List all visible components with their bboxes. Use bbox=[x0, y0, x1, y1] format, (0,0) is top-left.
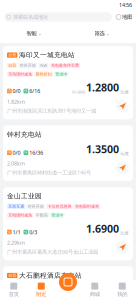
button[interactable]: 金山工业园 bbox=[3, 187, 133, 260]
staticText: 快 bbox=[7, 230, 11, 234]
staticText: 附近 bbox=[36, 291, 46, 297]
staticText: 1.82km bbox=[7, 98, 25, 105]
staticText: 1.6900 bbox=[86, 221, 119, 236]
staticText: 0/0 bbox=[13, 149, 21, 156]
staticText: 充电限时减免 bbox=[8, 72, 32, 77]
button[interactable]: 首页 bbox=[0, 283, 27, 297]
staticText: ¥1.3800 bbox=[72, 89, 85, 94]
staticText: 自营 bbox=[8, 273, 16, 278]
staticText: 16/36 bbox=[29, 149, 43, 156]
staticText: 地图 bbox=[122, 14, 132, 20]
staticText: 14:56 bbox=[119, 1, 132, 9]
staticText: 1.5500 bbox=[86, 292, 119, 300]
staticText: 1/1 bbox=[13, 228, 21, 236]
staticText: 智能 bbox=[26, 30, 36, 37]
staticText: 1.3500 bbox=[86, 142, 119, 156]
staticText: 2.08km bbox=[7, 160, 25, 167]
staticText: 大石鹏程酒店充电站 bbox=[19, 271, 82, 280]
button[interactable]: 钟村充电站 bbox=[3, 125, 133, 181]
staticText: 营业中 bbox=[55, 72, 67, 77]
staticText: 搜索站名或地址 bbox=[13, 14, 48, 20]
staticText: 充电桩免停车费 bbox=[51, 283, 79, 288]
staticText: 7kW bbox=[39, 63, 47, 68]
staticText: 限时折扣 bbox=[36, 72, 52, 77]
staticText: 充电限时减免 bbox=[75, 204, 99, 209]
button[interactable]: 扫一扫 bbox=[59, 273, 77, 291]
staticText: 慢 bbox=[24, 230, 28, 234]
staticText: ⌄ bbox=[105, 30, 109, 37]
button[interactable]: 自营 bbox=[3, 266, 133, 300]
staticText: 快 bbox=[7, 150, 11, 155]
button[interactable]: 附近 bbox=[27, 283, 55, 297]
button[interactable]: 导航 bbox=[116, 241, 129, 254]
button[interactable]: 智能 bbox=[0, 30, 68, 37]
button[interactable]: 自营 bbox=[3, 46, 133, 119]
staticText: 6/16 bbox=[29, 87, 40, 95]
staticText: 充电限时减免 bbox=[8, 213, 32, 218]
staticText: 元/度 bbox=[120, 230, 129, 236]
button[interactable]: 导航 bbox=[116, 100, 129, 113]
staticText: 元/度 bbox=[120, 89, 129, 94]
staticText: 商城 bbox=[90, 291, 100, 297]
staticText: 自营 bbox=[8, 63, 16, 68]
staticText: 7kW bbox=[39, 283, 47, 288]
staticText: 海印又一城充电站 bbox=[19, 51, 75, 59]
staticText: 2.29km bbox=[7, 239, 25, 246]
staticText: 广州市海珠区滨江东路381号海印又一城 bbox=[7, 107, 96, 114]
button[interactable]: 地图 bbox=[116, 14, 132, 20]
staticText: 自营 bbox=[8, 53, 16, 57]
staticText: 1.2800 bbox=[86, 80, 119, 95]
staticText: 对外开放 bbox=[28, 204, 44, 209]
staticText: 快 bbox=[7, 89, 11, 93]
staticText: 慢 bbox=[24, 89, 28, 93]
staticText: 慢 bbox=[24, 150, 28, 155]
button[interactable]: 导航 bbox=[116, 161, 129, 174]
staticText: 我的 bbox=[117, 291, 127, 297]
staticText: 卡位有优惠券 bbox=[47, 204, 71, 209]
staticText: 充电桩免停车费 bbox=[51, 63, 79, 68]
staticText: 对外开放 bbox=[20, 63, 36, 68]
staticText: 钟村充电站 bbox=[7, 130, 42, 138]
staticText: ⌄ bbox=[37, 30, 41, 37]
staticText: 元/度 bbox=[120, 151, 129, 156]
staticText: 金山工业园 bbox=[7, 192, 42, 200]
staticText: 首页 bbox=[9, 291, 19, 297]
staticText: 筛选 bbox=[94, 30, 104, 37]
staticText: 互联互通 bbox=[8, 204, 24, 209]
button[interactable]: 商城 bbox=[81, 283, 108, 297]
button[interactable]: 筛选 bbox=[68, 30, 136, 37]
staticText: 营业中 bbox=[51, 213, 63, 218]
staticText: 0/3 bbox=[29, 228, 37, 236]
staticText: 0/0 bbox=[13, 87, 21, 95]
staticText: 广州市番禺区钟村街道一工业区146号 bbox=[7, 169, 91, 176]
button[interactable]: 我的 bbox=[108, 283, 136, 297]
staticText: 广州市番禺区番禺大道北98号金山工业园 bbox=[7, 248, 98, 255]
staticText: 自营 bbox=[8, 283, 16, 288]
staticText: 不限高 bbox=[36, 213, 48, 218]
